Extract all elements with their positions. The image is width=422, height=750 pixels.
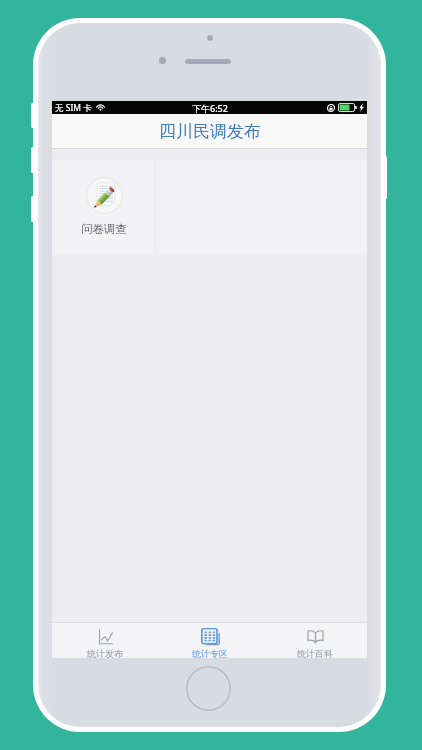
- staticText: 四川民调发布: [159, 121, 261, 142]
- other: 统计专区: [201, 628, 220, 645]
- staticText: 问卷调查: [81, 222, 127, 236]
- button[interactable]: 问卷调查: [52, 160, 155, 255]
- staticText: 下午6:52: [192, 102, 228, 114]
- button[interactable]: 统计百科: [262, 623, 367, 658]
- staticText: 统计百科: [297, 648, 333, 658]
- other: 统计发布: [97, 629, 113, 645]
- staticText: 统计专区: [192, 648, 228, 658]
- staticText: 统计发布: [87, 648, 123, 658]
- staticText: 无 SIM 卡: [55, 102, 92, 114]
- button[interactable]: 统计专区: [157, 623, 262, 658]
- button[interactable]: 统计发布: [52, 623, 157, 658]
- other: 统计百科: [307, 630, 324, 643]
